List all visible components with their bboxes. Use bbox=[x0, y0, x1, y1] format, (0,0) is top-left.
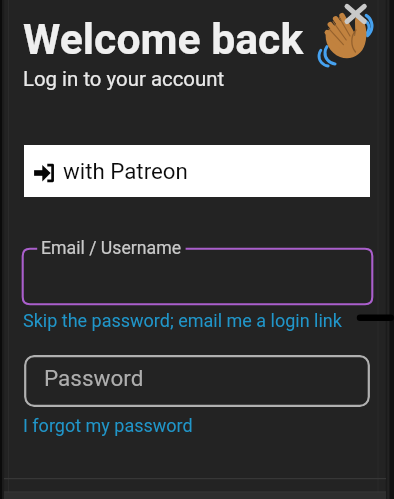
staticText: Email / Username bbox=[41, 238, 182, 259]
button[interactable]: with Patreon bbox=[24, 145, 370, 197]
button[interactable]: Skip the password; email me a login link bbox=[23, 310, 342, 331]
button[interactable]: I forgot my password bbox=[23, 415, 193, 436]
button[interactable] bbox=[21, 247, 374, 306]
staticText: with Patreon bbox=[63, 158, 188, 184]
staticText: Password bbox=[44, 365, 144, 391]
button[interactable]: Close bbox=[340, 0, 372, 32]
button[interactable]: Password bbox=[24, 355, 370, 407]
staticText: Welcome back bbox=[23, 14, 304, 64]
staticText: Log in to your account bbox=[23, 67, 225, 91]
